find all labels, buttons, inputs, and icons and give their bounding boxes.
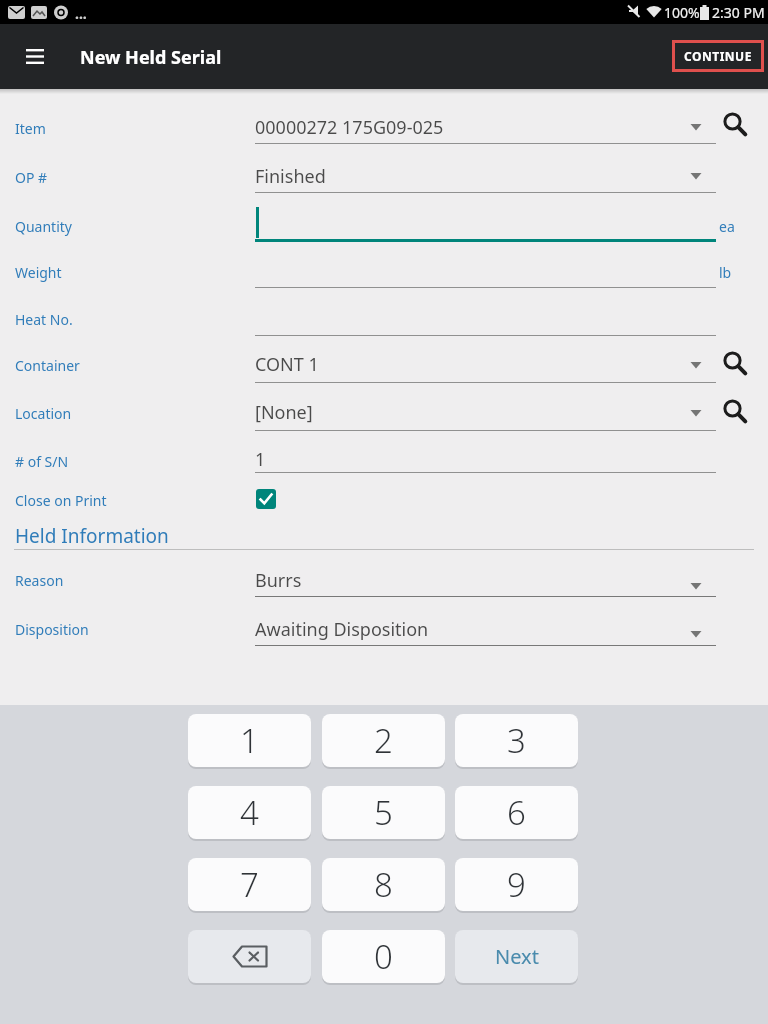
staticText: 6 xyxy=(507,790,526,835)
button[interactable]: 1 xyxy=(188,714,311,767)
button[interactable] xyxy=(255,612,716,646)
button[interactable] xyxy=(720,350,750,380)
button[interactable]: 7 xyxy=(188,858,311,911)
button[interactable]: 5 xyxy=(322,786,445,839)
button[interactable]: 8 xyxy=(322,858,445,911)
button[interactable]: Next xyxy=(455,930,578,983)
button[interactable] xyxy=(255,110,716,144)
staticText: 2 xyxy=(374,718,393,763)
staticText: Heat No. xyxy=(15,310,73,329)
staticText: New Held Serial xyxy=(80,45,222,70)
staticText: Close on Print xyxy=(15,491,107,510)
staticText: 1 xyxy=(255,447,266,472)
staticText: Awaiting Disposition xyxy=(255,617,429,642)
staticText: ea xyxy=(719,217,735,236)
staticText: # of S/N xyxy=(15,452,69,471)
staticText: 0 xyxy=(374,934,393,979)
staticText: Location xyxy=(15,404,72,423)
button[interactable]: 2 xyxy=(322,714,445,767)
staticText: Next xyxy=(495,943,539,970)
button[interactable] xyxy=(255,302,716,336)
button[interactable]: 3 xyxy=(455,714,578,767)
staticText: ... xyxy=(75,4,87,23)
staticText: Weight xyxy=(15,263,62,282)
button[interactable] xyxy=(255,255,716,289)
staticText: Finished xyxy=(255,164,326,189)
staticText: Held Information xyxy=(15,523,169,549)
button[interactable] xyxy=(255,442,716,476)
staticText: OP # xyxy=(15,168,48,187)
staticText: 7 xyxy=(240,862,259,907)
staticText: CONTINUE xyxy=(684,48,752,64)
staticText: 3 xyxy=(507,718,526,763)
staticText: 1 xyxy=(240,718,259,763)
staticText: 2:30 PM xyxy=(712,3,765,22)
button[interactable] xyxy=(720,111,750,141)
button[interactable] xyxy=(255,347,716,381)
staticText: [None] xyxy=(255,400,313,425)
button[interactable] xyxy=(720,398,750,428)
staticText: Quantity xyxy=(15,217,72,236)
button[interactable]: CONTINUE xyxy=(672,40,764,72)
staticText: 8 xyxy=(374,862,393,907)
staticText: 100% xyxy=(664,3,700,22)
staticText: 4 xyxy=(240,790,259,835)
button[interactable]: 6 xyxy=(455,786,578,839)
staticText: 9 xyxy=(507,862,526,907)
button[interactable] xyxy=(255,209,716,243)
staticText: lb xyxy=(719,263,732,282)
button[interactable] xyxy=(188,930,311,983)
button[interactable] xyxy=(255,395,716,429)
button[interactable] xyxy=(255,563,716,597)
button[interactable] xyxy=(26,48,45,65)
staticText: Reason xyxy=(15,571,64,590)
staticText: Container xyxy=(15,356,80,375)
button[interactable] xyxy=(255,159,716,193)
staticText: CONT 1 xyxy=(255,352,319,377)
staticText: 5 xyxy=(374,790,393,835)
staticText: Item xyxy=(15,119,46,138)
staticText: Burrs xyxy=(255,568,302,593)
button[interactable]: 9 xyxy=(455,858,578,911)
button[interactable]: 4 xyxy=(188,786,311,839)
staticText: 00000272 175G09-025 xyxy=(255,115,444,140)
staticText: Disposition xyxy=(15,620,89,639)
button[interactable] xyxy=(256,489,276,509)
button[interactable]: 0 xyxy=(322,930,445,983)
